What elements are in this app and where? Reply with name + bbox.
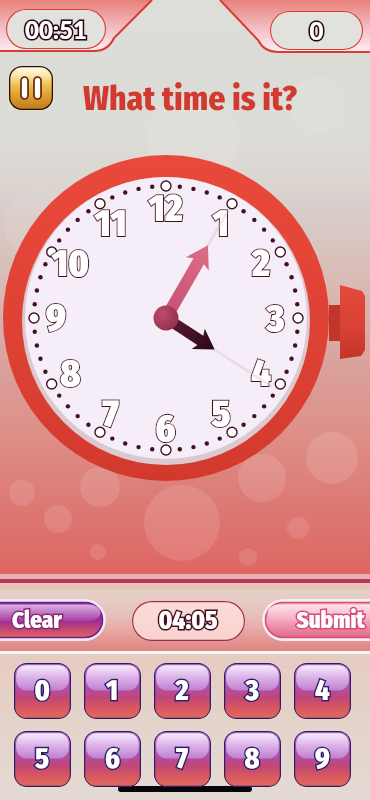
button[interactable] [132, 601, 245, 641]
button[interactable]: Time remaining [6, 9, 106, 49]
button[interactable] [84, 731, 141, 787]
button[interactable] [14, 663, 71, 719]
button[interactable] [262, 599, 370, 641]
button[interactable]: Pause [9, 66, 53, 110]
button[interactable] [294, 663, 351, 719]
button[interactable] [84, 663, 141, 719]
button[interactable] [14, 731, 71, 787]
button[interactable] [154, 731, 211, 787]
button[interactable] [224, 663, 281, 719]
button[interactable] [224, 731, 281, 787]
button[interactable] [294, 731, 351, 787]
button[interactable]: Score [270, 11, 363, 50]
button[interactable] [154, 663, 211, 719]
button[interactable] [0, 599, 106, 641]
